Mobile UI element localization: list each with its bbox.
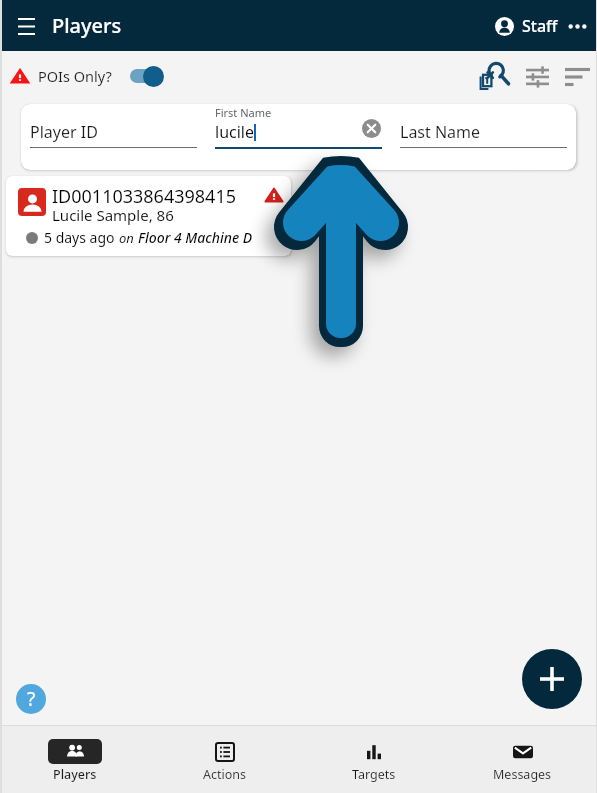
button[interactable]: Targets: [299, 726, 448, 793]
button[interactable]: More options: [562, 11, 592, 41]
button[interactable]: Player ID: [30, 104, 197, 170]
staticText: First Name: [215, 105, 272, 120]
staticText: Floor 4 Machine D: [138, 228, 253, 247]
button[interactable]: Add: [522, 649, 582, 709]
staticText: Players: [52, 12, 122, 39]
staticText: on: [119, 229, 138, 247]
staticText: Messages: [493, 766, 552, 783]
button[interactable]: First Name: [215, 104, 382, 170]
button[interactable]: Sort: [557, 56, 597, 96]
button[interactable]: POIs Only?: [8, 63, 164, 89]
staticText: Actions: [203, 766, 247, 783]
staticText: lucile: [215, 121, 254, 143]
button[interactable]: ID0011033864398415: [6, 176, 291, 256]
staticText: Lucile Sample, 86: [52, 205, 174, 225]
button[interactable]: Menu: [9, 9, 43, 43]
staticText: Targets: [352, 766, 396, 783]
button[interactable]: Staff: [491, 15, 562, 37]
button[interactable]: Clear text: [360, 117, 382, 139]
staticText: Player ID: [30, 121, 98, 143]
staticText: ?: [27, 686, 36, 712]
staticText: Players: [53, 766, 97, 783]
button[interactable]: Filter: [517, 56, 557, 96]
staticText: Last Name: [400, 121, 481, 143]
button[interactable]: Help: [16, 684, 46, 714]
staticText: POIs Only?: [38, 66, 112, 86]
button[interactable]: Players: [0, 726, 150, 793]
staticText: 5 days ago: [44, 228, 119, 247]
button[interactable]: Clear search: [475, 56, 515, 96]
staticText: ID0011033864398415: [52, 184, 236, 209]
button[interactable]: Messages: [448, 726, 597, 793]
button[interactable]: Actions: [150, 726, 299, 793]
button[interactable]: Last Name: [400, 104, 567, 170]
staticText: Staff: [522, 15, 558, 37]
